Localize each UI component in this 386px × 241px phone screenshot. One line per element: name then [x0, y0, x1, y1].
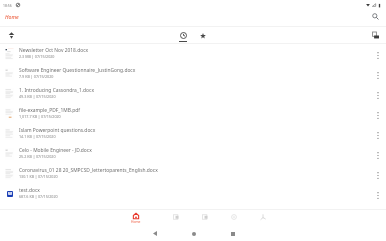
button[interactable]: Starred	[193, 27, 213, 43]
staticText: 7.9 KB | 07/15/2020	[19, 74, 54, 79]
button[interactable]: Celo - Mobile Engineer - JD.docx	[0, 144, 386, 164]
button[interactable]: More options	[371, 127, 385, 141]
button[interactable]: Home	[121, 210, 150, 226]
staticText: Newsletter Oct Nov 2018.docx	[19, 47, 89, 54]
staticText: 14.1 KB | 07/15/2020	[19, 134, 56, 139]
staticText: Home	[131, 219, 141, 223]
button[interactable]: Recent	[173, 27, 193, 43]
button[interactable]: Word	[161, 210, 190, 226]
button[interactable]: 1. Introducing Cassondra_1.docx	[0, 84, 386, 104]
staticText: 130.1 KB | 07/15/2020	[19, 174, 58, 179]
staticText: test.docx	[19, 187, 40, 194]
button[interactable]: More options	[371, 107, 385, 121]
staticText: Software Engineer Questionnaire_JustinGo…	[19, 67, 136, 74]
button[interactable]: W	[0, 184, 386, 204]
button[interactable]: Home	[174, 226, 213, 241]
button[interactable]: Software Engineer Questionnaire_JustinGo…	[0, 64, 386, 84]
button[interactable]: Islam Powerpoint questions.docx	[0, 124, 386, 144]
button[interactable]: Search	[368, 10, 382, 22]
button[interactable]: More options	[371, 147, 385, 161]
staticText: 18:56	[3, 3, 12, 8]
button[interactable]: Sort	[4, 28, 18, 42]
button[interactable]: More options	[371, 167, 385, 181]
staticText: file-example_PDF_1MB.pdf	[19, 107, 80, 114]
staticText: Home	[5, 13, 19, 20]
button[interactable]: Excel	[190, 210, 219, 226]
staticText: 1. Introducing Cassondra_1.docx	[19, 87, 95, 94]
staticText: 25.2 KB | 07/15/2020	[19, 154, 56, 159]
button[interactable]: PDF	[248, 210, 277, 226]
staticText: Coronavirus_01 28 20_SMPCSD_lettertopare…	[19, 167, 158, 174]
staticText: W	[8, 191, 13, 197]
button[interactable]: Coronavirus_01 28 20_SMPCSD_lettertopare…	[0, 164, 386, 184]
button[interactable]: More options	[371, 87, 385, 101]
staticText: 2.3 MB | 07/15/2020	[19, 54, 55, 59]
staticText: 49.3 KB | 07/15/2020	[19, 94, 56, 99]
button[interactable]: More options	[371, 187, 385, 201]
staticText: 1,017.7 KB | 07/15/2020	[19, 114, 61, 119]
button[interactable]: Newsletter Oct Nov 2018.docx	[0, 44, 386, 64]
button[interactable]: PowerPoint	[219, 210, 248, 226]
button[interactable]: Back	[135, 226, 174, 241]
button[interactable]: More options	[371, 47, 385, 61]
button[interactable]: file-example_PDF_1MB.pdf	[0, 104, 386, 124]
staticText: Celo - Mobile Engineer - JD.docx	[19, 147, 92, 154]
staticText: Islam Powerpoint questions.docx	[19, 127, 96, 134]
button[interactable]: View mode	[368, 28, 382, 42]
staticText: 687.6 KB | 07/15/2020	[19, 194, 58, 199]
button[interactable]: Recents	[213, 226, 252, 241]
button[interactable]: More options	[371, 67, 385, 81]
